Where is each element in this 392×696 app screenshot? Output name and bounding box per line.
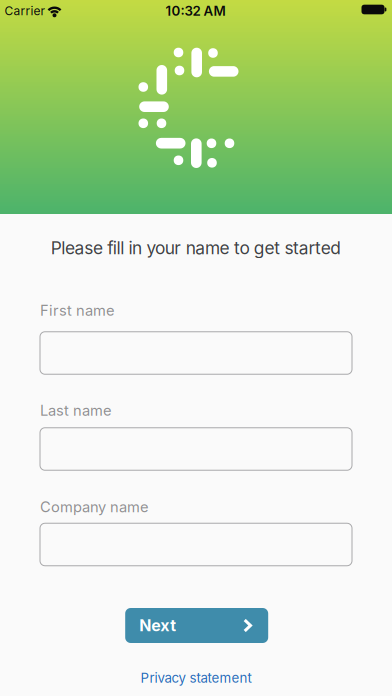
- staticText: Privacy statement: [140, 670, 251, 686]
- staticText: First name: [40, 302, 115, 319]
- button[interactable]: Last name: [40, 428, 352, 470]
- staticText: Carrier: [4, 4, 45, 18]
- staticText: Last name: [40, 402, 112, 419]
- button[interactable]: First name: [40, 332, 352, 374]
- button[interactable]: Next: [125, 608, 268, 643]
- staticText: 10:32 AM: [165, 3, 225, 19]
- button[interactable]: Privacy statement: [140, 670, 251, 686]
- staticText: Please fill in your name to get started: [51, 238, 341, 258]
- button[interactable]: Company name: [40, 523, 352, 566]
- staticText: Next: [139, 616, 176, 635]
- staticText: Company name: [40, 498, 149, 516]
